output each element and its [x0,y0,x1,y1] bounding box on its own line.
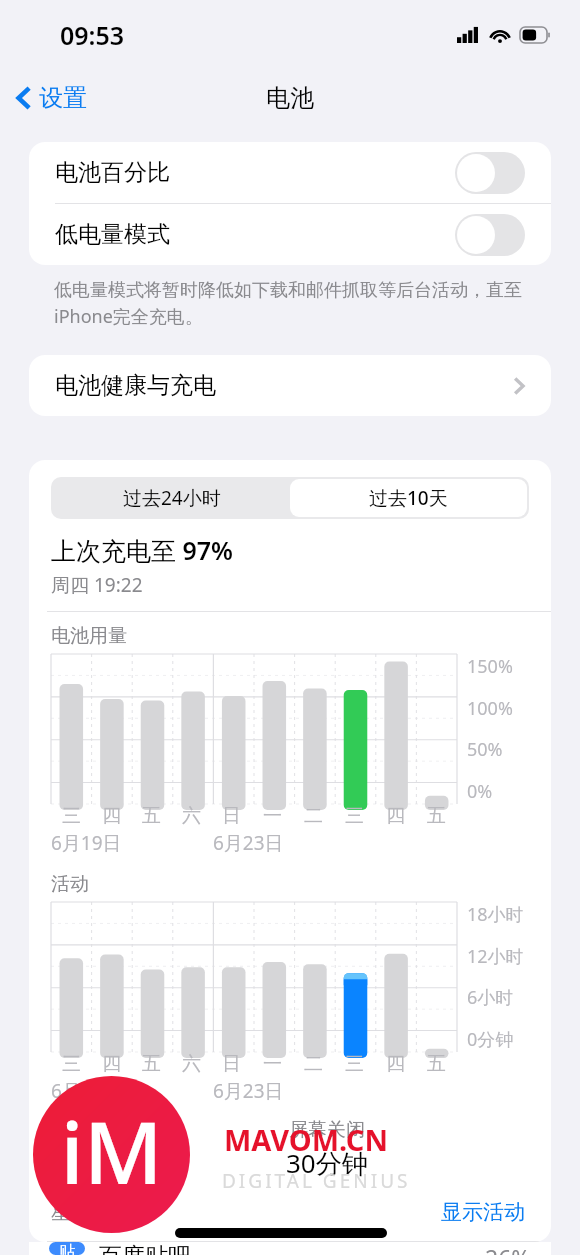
staticText: 四 [386,804,405,828]
button[interactable]: 低电量模式 [29,204,551,265]
staticText: 贴 [59,1242,75,1255]
staticText: 五 [427,1052,446,1076]
staticText: 电池健康与充电 [55,371,513,400]
staticText: 一 [263,1052,282,1076]
staticText: 活动 [51,872,89,896]
staticText: 屏幕开启 [51,1118,127,1142]
staticText: 6月19日 [51,1078,122,1104]
staticText: 五 [142,1052,161,1076]
staticText: 过去10天 [369,485,448,511]
staticText: 6月23日 [213,830,284,856]
staticText: 四 [102,804,121,828]
staticText: 周四 19:22 [51,572,143,598]
staticText: 26% [485,1242,531,1255]
button[interactable]: 电池健康与充电 [29,355,551,416]
staticText: 09:53 [60,18,125,52]
staticText: 四 [386,1052,405,1076]
staticText: 三 [62,804,81,828]
staticText: 屏幕关闭 [289,1118,365,1142]
staticText: 六 [182,804,201,828]
staticText: 150% [467,654,513,679]
staticText: 一 [263,804,282,828]
staticText: 分钟 [51,1145,103,1178]
staticText: 星期三 [51,1200,437,1225]
button[interactable]: 过去10天 [290,479,527,517]
staticText: 五 [427,804,446,828]
staticText: 显示活动 [441,1199,525,1225]
staticText: 二 [304,1052,323,1076]
staticText: DIGITAL GENIUS [222,1168,411,1194]
button[interactable]: 电池百分比 [29,142,551,203]
staticText: 18小时 [467,902,524,927]
staticText: 六 [182,1052,201,1076]
button[interactable]: 贴 [29,1242,551,1255]
button[interactable]: 过去24小时 [53,479,290,517]
staticText: 三 [62,1052,81,1076]
staticText: 二 [304,804,323,828]
staticText: 过去24小时 [123,485,221,511]
staticText: 6月23日 [213,1078,284,1104]
staticText: 电池 [266,83,314,113]
staticText: 100% [467,696,513,721]
staticText: 6月19日 [51,830,122,856]
other: 低电量模式 [455,214,525,256]
staticText: 上次充电至 97% [51,533,233,567]
staticText: 三 [345,804,364,828]
staticText: 百度贴吧 [99,1242,191,1255]
staticText: 0分钟 [467,1027,514,1052]
staticText: 日 [222,1052,241,1076]
staticText: 五 [142,804,161,828]
staticText: 50% [467,737,503,762]
staticText: 低电量模式将暂时降低如下载和邮件抓取等后台活动，直至 iPhone完全充电。 [54,279,522,329]
other: 电池百分比 [455,152,525,194]
staticText: 设置 [39,83,87,113]
button[interactable]: 显示活动 [437,1195,529,1229]
staticText: 6小时 [467,985,514,1010]
staticText: 日 [222,804,241,828]
staticText: 三 [345,1052,364,1076]
staticText: 30分钟 [286,1145,368,1181]
staticText: 12小时 [467,944,524,969]
staticText: 低电量模式 [55,220,455,249]
staticText: 电池百分比 [55,158,455,187]
button[interactable]: 设置 [0,77,99,119]
staticText: 电池用量 [51,624,127,648]
staticText: iM [60,1092,163,1209]
staticText: 0% [467,779,493,804]
staticText: 四 [102,1052,121,1076]
staticText: MAVOM.CN [224,1120,388,1159]
